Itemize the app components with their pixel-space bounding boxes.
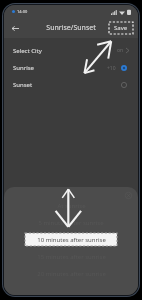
staticText: 10 minutes after sunrise bbox=[37, 236, 106, 244]
staticText: Sunrise/Sunset bbox=[46, 23, 96, 33]
button[interactable]: 10 minutes after sunrise bbox=[4, 231, 138, 248]
button[interactable]: Sunrise bbox=[4, 59, 138, 76]
button[interactable]: Sunset bbox=[4, 76, 138, 93]
staticText: At sunrise bbox=[57, 202, 86, 210]
button[interactable]: Not selected bbox=[119, 80, 129, 90]
staticText: Sunrise bbox=[13, 64, 34, 72]
button[interactable]: Save bbox=[109, 22, 133, 34]
staticText: +10 bbox=[107, 65, 116, 72]
staticText: Save bbox=[114, 24, 128, 32]
staticText: Sunset bbox=[13, 81, 33, 89]
button[interactable]: Back bbox=[8, 21, 22, 35]
staticText: on bbox=[117, 47, 124, 54]
button[interactable]: Select City bbox=[4, 42, 138, 59]
staticText: 14:00 bbox=[17, 9, 28, 14]
staticText: Select City bbox=[13, 47, 42, 55]
button[interactable]: 5 minutes after sunrise bbox=[4, 214, 138, 231]
button[interactable]: At sunrise bbox=[4, 197, 138, 214]
button[interactable]: Selected bbox=[119, 63, 129, 73]
staticText: 5 minutes after sunrise bbox=[38, 219, 104, 227]
